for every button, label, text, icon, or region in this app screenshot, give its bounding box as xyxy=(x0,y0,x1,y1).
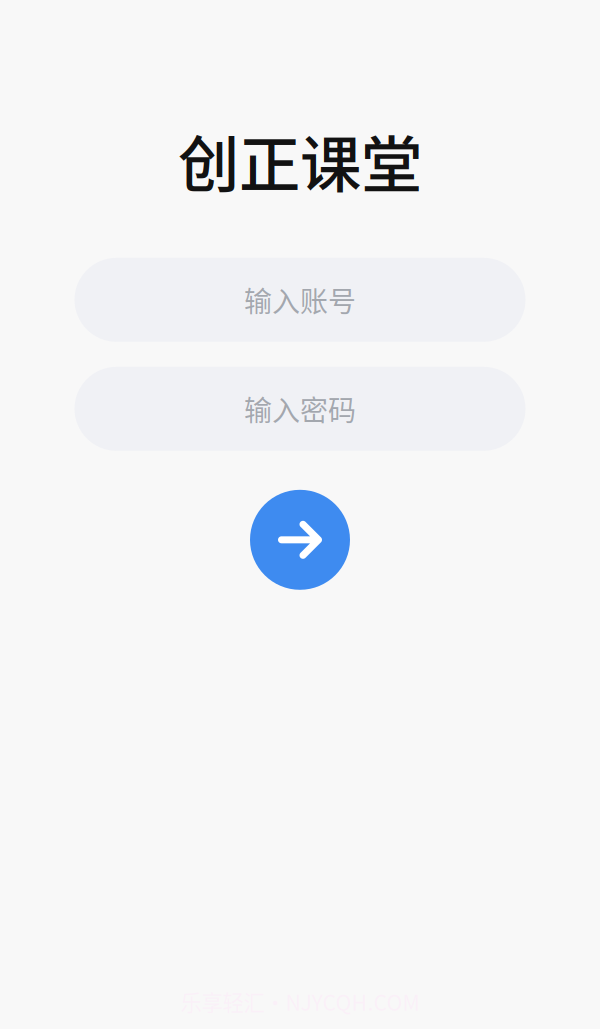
staticText: 输入密码 xyxy=(244,388,356,429)
button[interactable]: 输入密码 xyxy=(74,367,525,451)
button[interactable]: 输入账号 xyxy=(74,258,525,342)
staticText: 创正课堂 xyxy=(178,116,422,205)
button[interactable]: 登录 xyxy=(250,490,350,590)
staticText: 输入账号 xyxy=(244,279,356,320)
